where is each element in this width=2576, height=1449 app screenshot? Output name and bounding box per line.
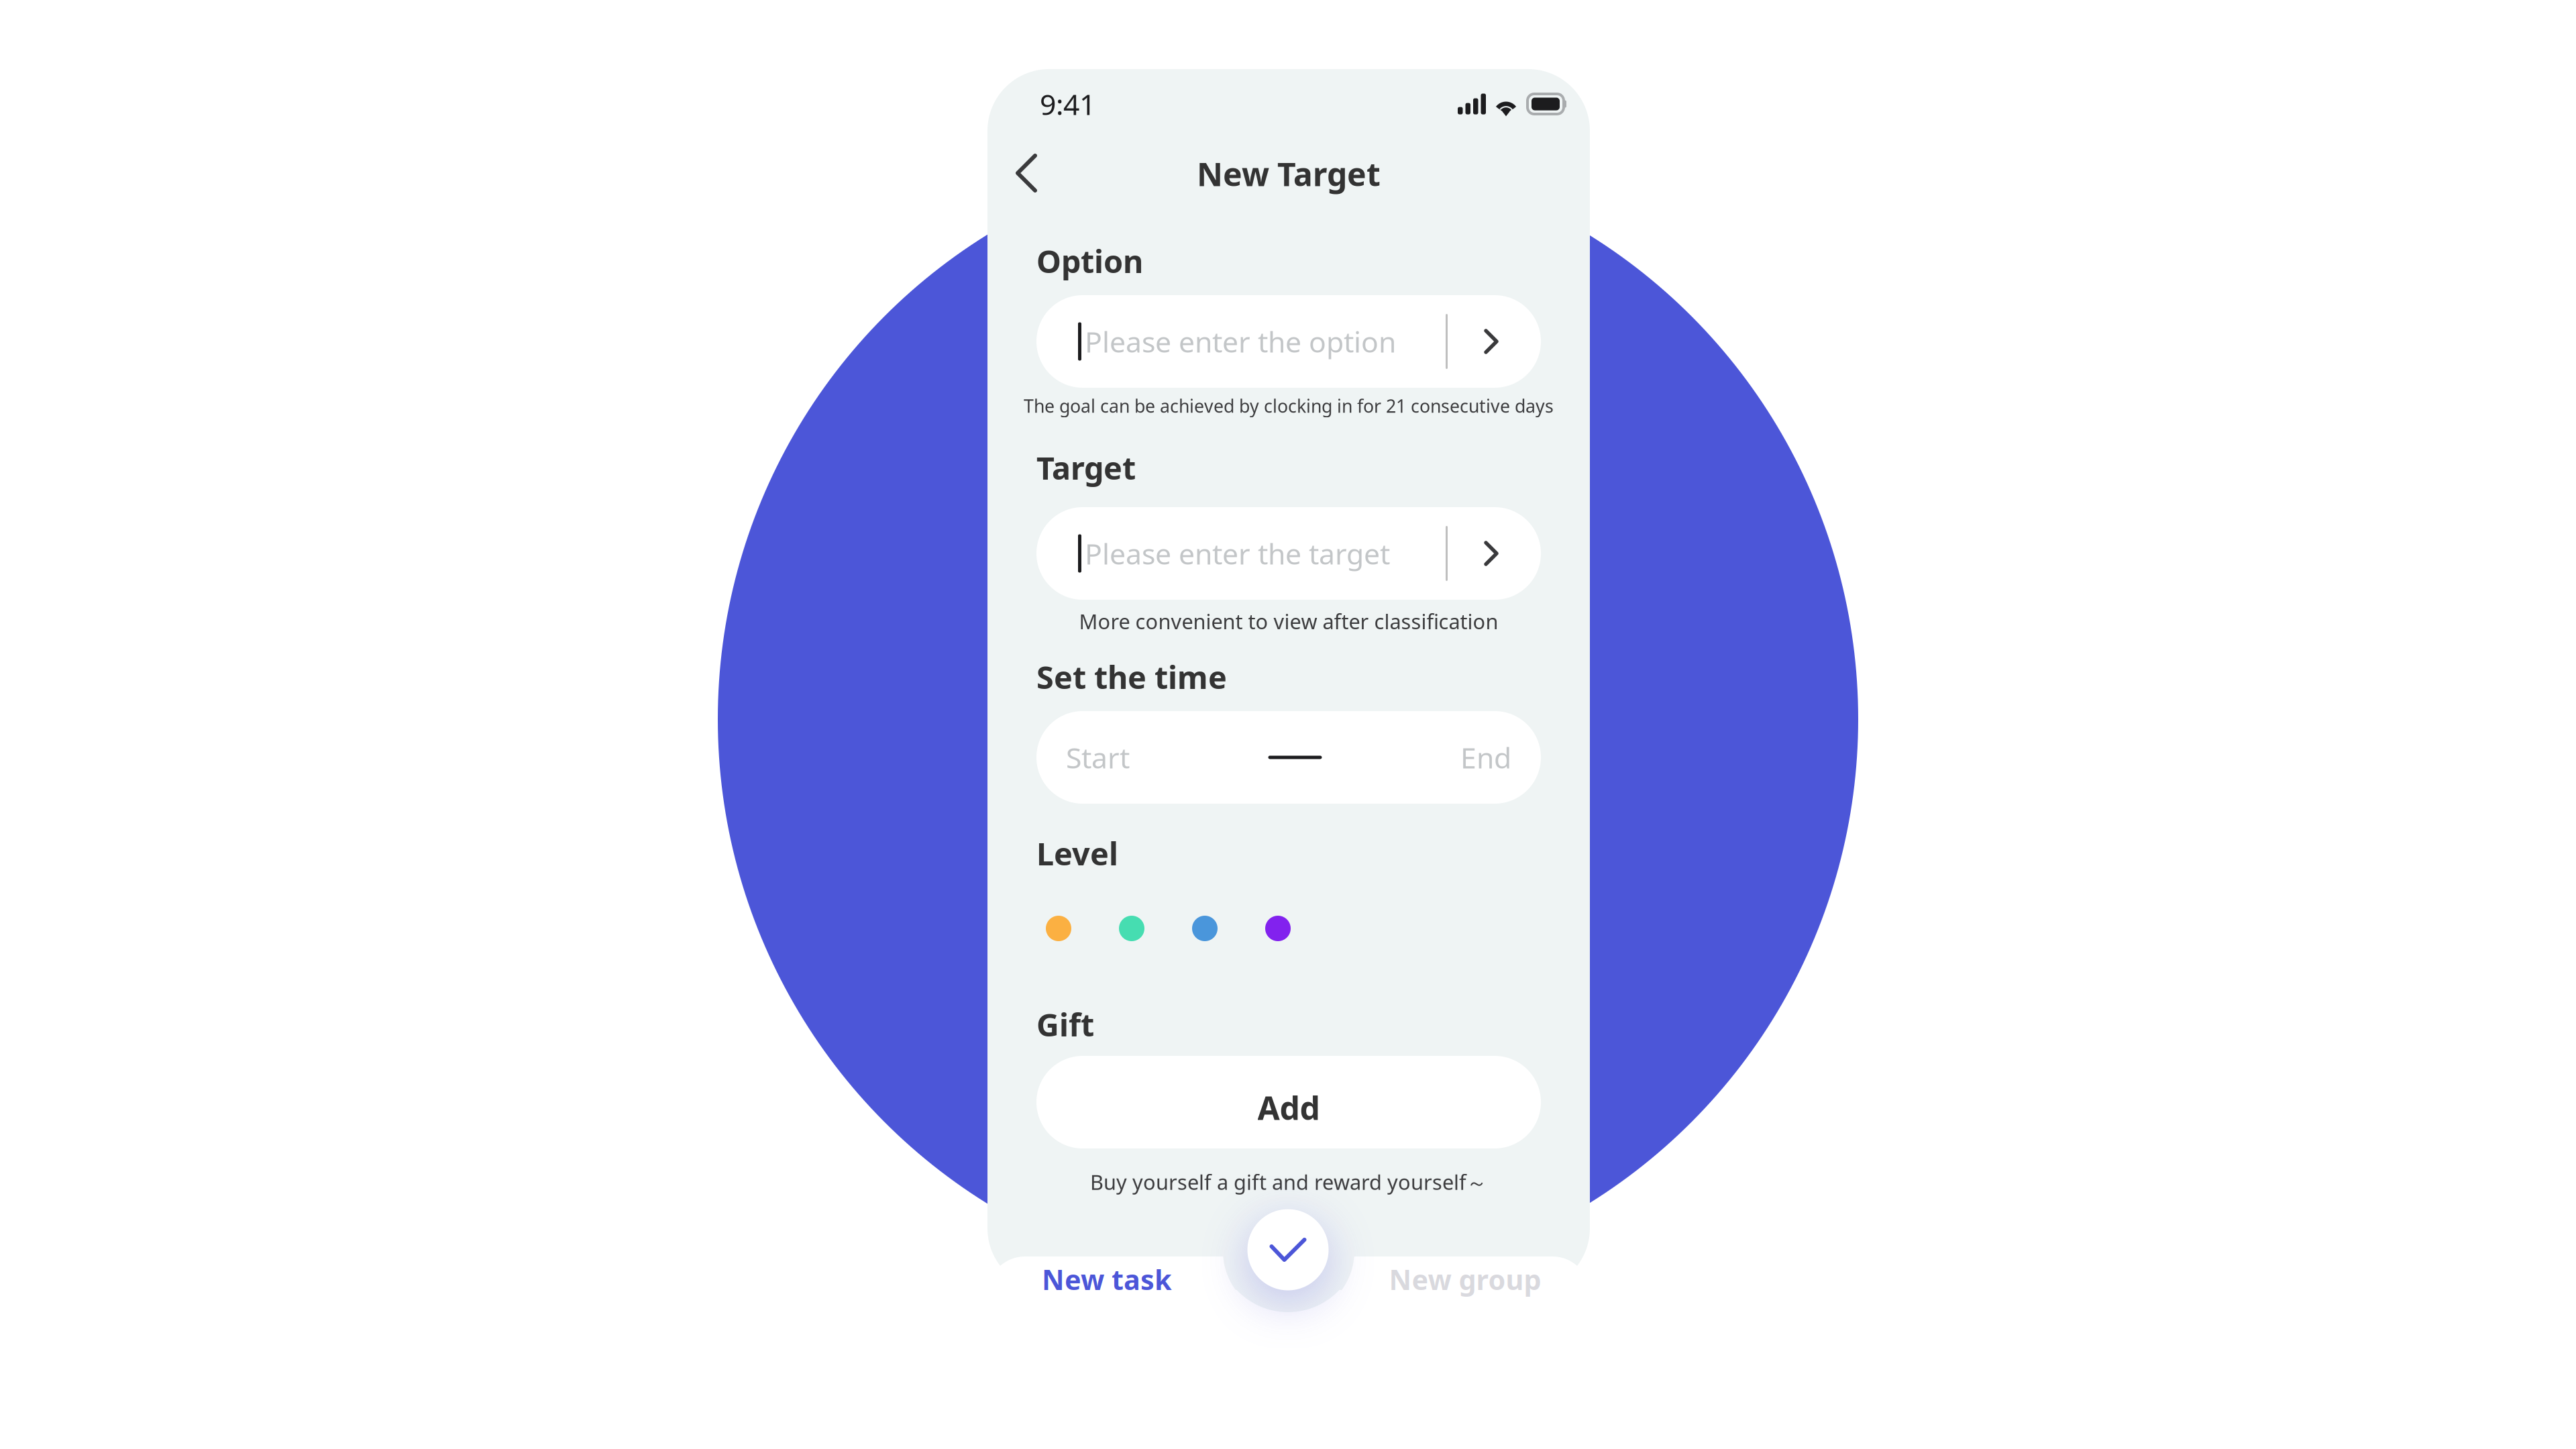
- button[interactable]: Purple level: [1265, 916, 1291, 941]
- staticText: Please enter the target: [1085, 534, 1390, 572]
- button[interactable]: New task: [1006, 1243, 1207, 1316]
- staticText: The goal can be achieved by clocking in …: [1024, 394, 1554, 418]
- staticText: Please enter the option: [1085, 322, 1396, 361]
- button[interactable]: Back: [993, 140, 1060, 207]
- staticText: Gift: [1036, 1004, 1094, 1045]
- button[interactable]: Green level: [1119, 916, 1144, 941]
- button[interactable]: New group: [1364, 1243, 1566, 1316]
- staticText: Target: [1036, 447, 1136, 488]
- staticText: New Target: [1197, 152, 1381, 195]
- button[interactable]: Confirm: [1231, 1193, 1345, 1307]
- staticText: More convenient to view after classifica…: [1079, 608, 1498, 635]
- staticText: Add: [1257, 1086, 1320, 1129]
- button[interactable]: Please enter the target: [1036, 507, 1541, 600]
- button[interactable]: Start: [1036, 711, 1541, 804]
- staticText: Level: [1036, 833, 1118, 874]
- staticText: End: [1460, 738, 1511, 776]
- staticText: Set the time: [1036, 656, 1227, 698]
- staticText: Buy yourself a gift and reward yourself～: [1090, 1168, 1487, 1196]
- button[interactable]: Please enter the option: [1036, 295, 1541, 388]
- staticText: New task: [1042, 1261, 1172, 1298]
- button[interactable]: Orange level: [1046, 916, 1071, 941]
- staticText: Start: [1066, 738, 1130, 776]
- staticText: New group: [1389, 1261, 1541, 1298]
- button[interactable]: Blue level: [1192, 916, 1218, 941]
- staticText: Option: [1036, 240, 1143, 282]
- button[interactable]: Add: [1036, 1056, 1541, 1148]
- staticText: 9:41: [1040, 85, 1095, 123]
